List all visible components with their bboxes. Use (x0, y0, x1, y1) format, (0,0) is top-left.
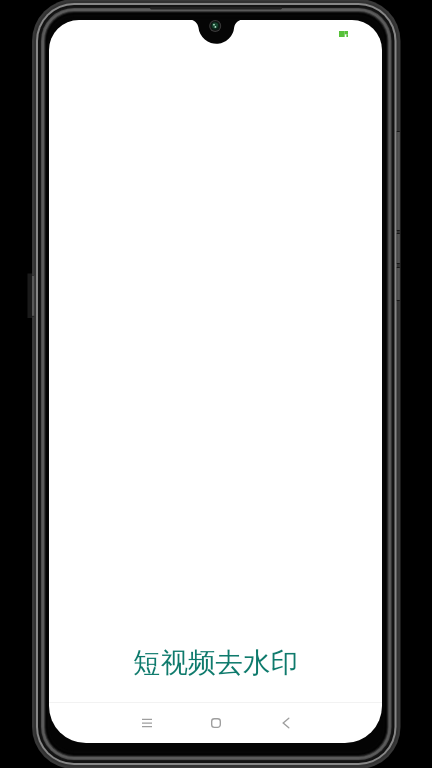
button[interactable]: Recent apps (120, 703, 174, 743)
button[interactable]: Home (189, 703, 243, 743)
staticText: 短视频去水印 (49, 646, 382, 681)
button[interactable]: Back (259, 703, 313, 743)
